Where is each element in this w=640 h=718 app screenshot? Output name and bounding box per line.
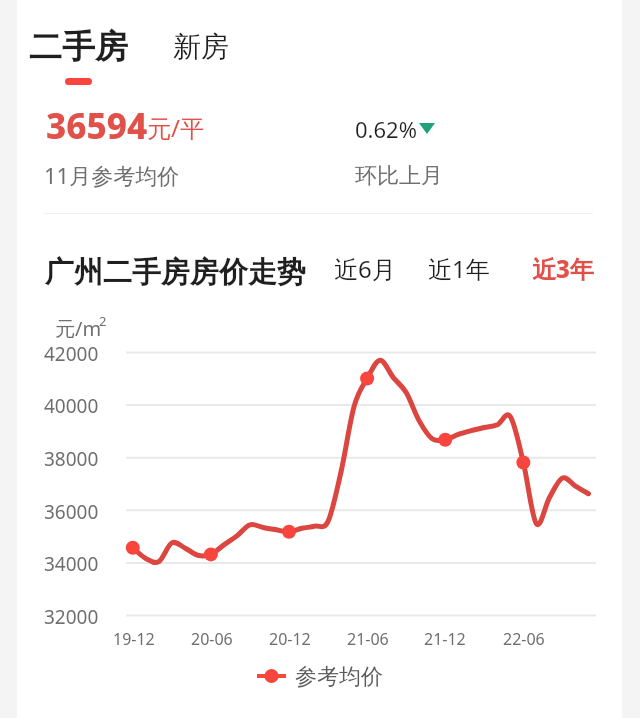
staticText: 21-12 <box>424 628 466 650</box>
staticText: 32000 <box>44 604 99 630</box>
staticText: 广州二手房房价走势 <box>45 254 306 291</box>
staticText: 近6月 <box>334 252 396 285</box>
button[interactable]: 近3年 <box>525 245 601 289</box>
staticText: 二手房 <box>29 26 128 68</box>
button[interactable]: 近6月 <box>327 245 401 289</box>
staticText: 新房 <box>173 29 229 64</box>
staticText: 环比上月 <box>355 162 443 190</box>
staticText: 36000 <box>44 499 99 525</box>
staticText: 0.62% <box>355 114 417 144</box>
staticText: 参考均价 <box>295 663 383 691</box>
staticText: 20-12 <box>269 628 311 650</box>
staticText: 38000 <box>44 446 99 472</box>
staticText: 元/平 <box>147 111 204 144</box>
staticText: 2 <box>99 312 107 330</box>
other: Down <box>419 123 435 134</box>
staticText: 20-06 <box>191 628 233 650</box>
staticText: 34000 <box>44 551 99 577</box>
button[interactable]: 近1年 <box>421 245 495 289</box>
button[interactable]: 二手房 <box>26 20 130 90</box>
staticText: 40000 <box>44 393 99 419</box>
staticText: 42000 <box>44 341 99 367</box>
staticText: 近3年 <box>532 252 594 285</box>
staticText: 36594 <box>46 102 148 150</box>
staticText: 11月参考均价 <box>44 160 180 190</box>
staticText: 近1年 <box>428 252 490 285</box>
staticText: 元/m <box>55 315 102 342</box>
staticText: 21-06 <box>347 628 389 650</box>
staticText: 22-06 <box>503 628 545 650</box>
button[interactable]: 新房 <box>168 24 234 68</box>
staticText: 19-12 <box>113 628 155 650</box>
other: Reference average price series <box>257 668 286 684</box>
